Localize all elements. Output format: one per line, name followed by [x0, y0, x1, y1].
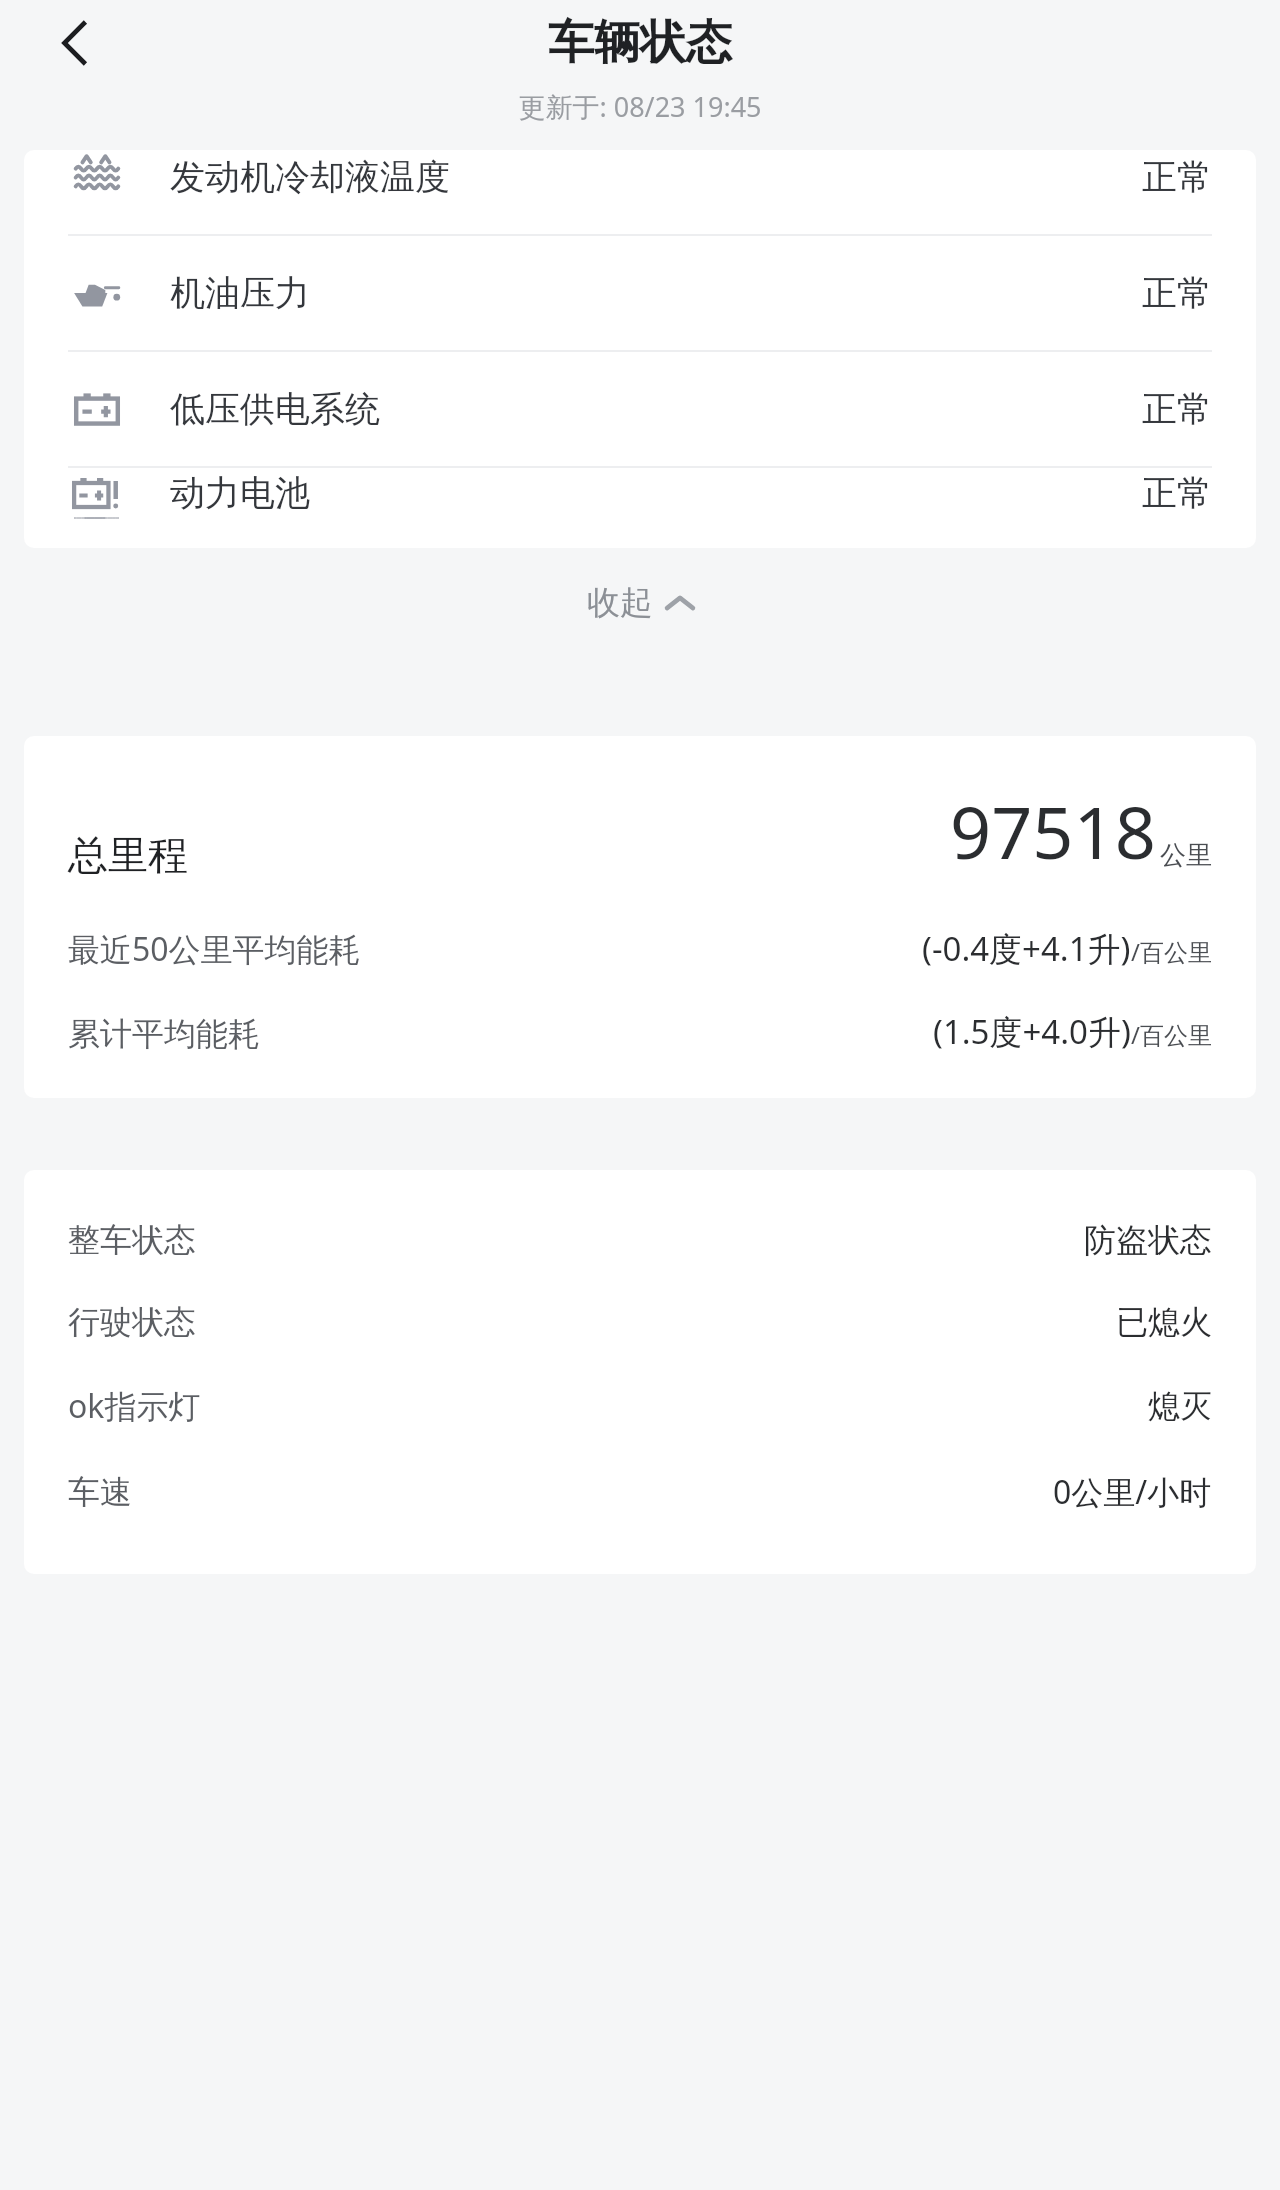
staticText: 总里程	[68, 830, 188, 880]
staticText: 车辆状态	[548, 14, 732, 72]
staticText: /百公里	[1131, 1018, 1212, 1051]
staticText: 机油压力	[170, 271, 310, 315]
button[interactable]: Back	[40, 8, 110, 78]
staticText: 累计平均能耗	[68, 1014, 260, 1054]
button[interactable]: 车速	[68, 1470, 1212, 1514]
staticText: 正常	[1142, 155, 1212, 199]
button[interactable]: 收起	[557, 566, 723, 640]
button[interactable]: ok指示灯	[68, 1384, 1212, 1428]
staticText: 正常	[1142, 471, 1212, 515]
button[interactable]: 动力电池	[24, 468, 1256, 518]
button[interactable]: 发动机冷却液温度	[24, 150, 1256, 234]
staticText: 更新于: 08/23 19:45	[518, 88, 762, 125]
staticText: 0公里/小时	[1053, 1470, 1212, 1514]
staticText: 已熄火	[1116, 1302, 1212, 1342]
staticText: 正常	[1142, 271, 1212, 315]
staticText: 防盗状态	[1084, 1220, 1212, 1260]
staticText: 收起	[587, 582, 653, 624]
staticText: ok指示灯	[68, 1384, 201, 1428]
button[interactable]: 整车状态	[68, 1220, 1212, 1260]
staticText: /百公里	[1131, 935, 1212, 968]
button[interactable]: 低压供电系统	[24, 352, 1256, 466]
button[interactable]: 累计平均能耗	[68, 1009, 1212, 1054]
button[interactable]: 机油压力	[24, 236, 1256, 350]
staticText: 正常	[1142, 387, 1212, 431]
staticText: 发动机冷却液温度	[170, 155, 450, 199]
button[interactable]: 最近50公里平均能耗	[68, 926, 1212, 971]
staticText: 整车状态	[68, 1220, 196, 1260]
staticText: 熄灭	[1148, 1386, 1212, 1426]
staticText: 低压供电系统	[170, 387, 380, 431]
button[interactable]: 行驶状态	[68, 1302, 1212, 1342]
staticText: 97518	[950, 782, 1156, 880]
staticText: (1.5度+4.0升)	[933, 1009, 1131, 1054]
staticText: (-0.4度+4.1升)	[922, 926, 1131, 971]
staticText: 公里	[1160, 839, 1212, 872]
staticText: 动力电池	[170, 471, 310, 515]
staticText: 行驶状态	[68, 1302, 196, 1342]
staticText: 最近50公里平均能耗	[68, 927, 361, 971]
staticText: 车速	[68, 1472, 132, 1512]
